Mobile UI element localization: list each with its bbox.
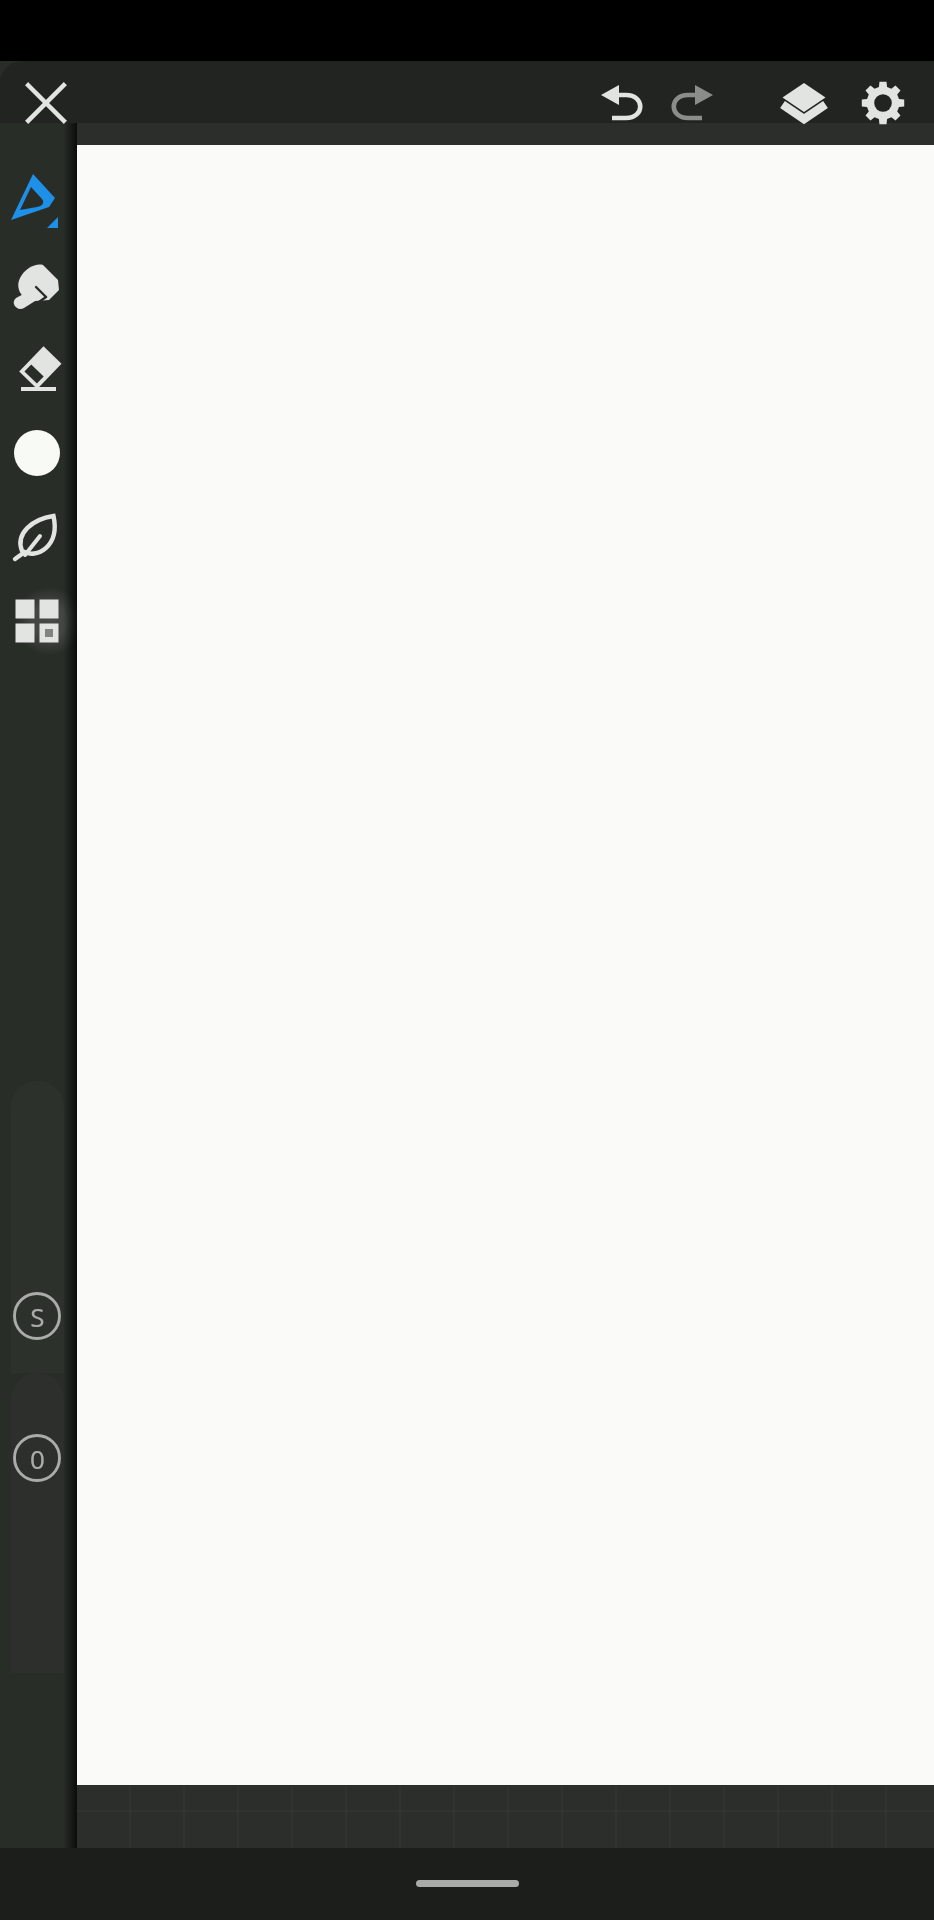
button[interactable]: Brush size value (13, 1292, 61, 1340)
button[interactable]: Tools (9, 593, 65, 649)
button[interactable]: Brush (9, 173, 65, 229)
button[interactable]: Settings (851, 71, 915, 135)
button[interactable]: Layers (772, 71, 836, 135)
button[interactable]: Brush opacity (11, 1373, 64, 1673)
button[interactable]: Color (9, 425, 65, 481)
staticText: S (30, 1299, 45, 1334)
staticText: 0 (30, 1441, 45, 1476)
button[interactable]: Brush opacity value (13, 1434, 61, 1482)
button[interactable]: Smudge (9, 259, 65, 315)
button[interactable]: Undo (590, 71, 654, 135)
button[interactable]: Effects (9, 510, 65, 566)
button[interactable]: Eraser (9, 343, 65, 399)
button[interactable]: Brush size (11, 1081, 64, 1373)
button[interactable]: Redo (660, 71, 724, 135)
button[interactable]: Home (416, 1880, 519, 1887)
button[interactable]: Close (14, 71, 78, 135)
